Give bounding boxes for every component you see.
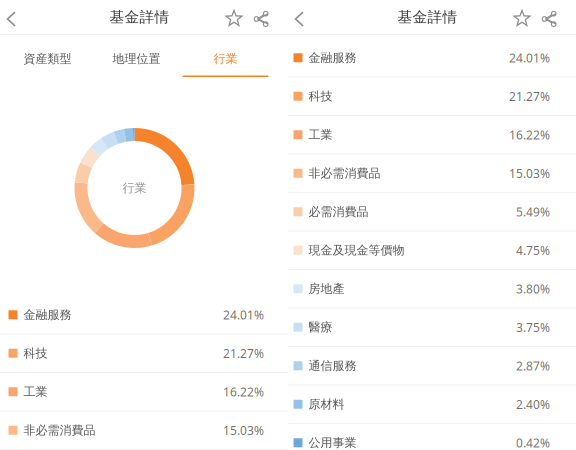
button[interactable]: Back: [292, 9, 308, 29]
staticText: 地理位置: [112, 51, 160, 66]
staticText: 科技: [23, 346, 47, 361]
staticText: 4.75%: [516, 242, 550, 258]
staticText: 3.80%: [516, 281, 550, 297]
button[interactable]: 非必需消費品: [288, 154, 576, 193]
staticText: 現金及現金等價物: [308, 243, 404, 258]
staticText: 基金詳情: [397, 8, 457, 26]
button[interactable]: 公用事業: [288, 424, 576, 450]
button[interactable]: 現金及現金等價物: [288, 231, 576, 270]
staticText: 2.40%: [516, 396, 550, 412]
staticText: 非必需消費品: [23, 423, 95, 438]
staticText: 工業: [23, 384, 47, 399]
button[interactable]: 科技: [288, 77, 576, 116]
button[interactable]: Add to favourites: [214, 9, 243, 28]
button[interactable]: 科技: [0, 334, 288, 373]
staticText: 3.75%: [516, 319, 550, 335]
button[interactable]: 房地產: [288, 270, 576, 308]
button[interactable]: 金融服務: [0, 296, 288, 334]
staticText: 醫療: [308, 320, 332, 335]
staticText: 金融服務: [308, 50, 356, 65]
staticText: 15.03%: [509, 165, 550, 181]
staticText: 15.03%: [223, 422, 264, 438]
button[interactable]: Add to favourites: [502, 9, 531, 28]
button[interactable]: 通信服務: [288, 347, 576, 385]
staticText: 行業: [122, 181, 146, 195]
staticText: 工業: [308, 127, 332, 142]
staticText: 必需消費品: [308, 204, 368, 219]
button[interactable]: 非必需消費品: [0, 411, 288, 450]
staticText: 非必需消費品: [308, 166, 380, 181]
button[interactable]: 金融服務: [288, 39, 576, 77]
button[interactable]: 醫療: [288, 308, 576, 347]
staticText: 通信服務: [308, 358, 356, 373]
button[interactable]: 地理位置: [92, 35, 181, 80]
staticText: 2.87%: [516, 358, 550, 374]
button[interactable]: Back: [4, 9, 20, 29]
staticText: 16.22%: [509, 127, 550, 143]
staticText: 21.27%: [509, 88, 550, 104]
button[interactable]: 工業: [0, 373, 288, 411]
button[interactable]: 工業: [288, 116, 576, 154]
button[interactable]: 行業: [181, 35, 270, 80]
staticText: 16.22%: [223, 384, 264, 400]
staticText: 金融服務: [23, 307, 71, 322]
staticText: 24.01%: [509, 50, 550, 66]
staticText: 資産類型: [23, 51, 71, 66]
staticText: 0.42%: [516, 435, 550, 450]
staticText: 公用事業: [308, 435, 356, 450]
button[interactable]: 必需消費品: [288, 193, 576, 231]
staticText: 行業: [213, 51, 237, 66]
staticText: 24.01%: [223, 307, 264, 323]
staticText: 房地產: [308, 281, 344, 296]
staticText: 原材料: [308, 397, 344, 412]
staticText: 科技: [308, 89, 332, 104]
button[interactable]: Share: [243, 9, 270, 28]
staticText: 21.27%: [223, 345, 264, 361]
button[interactable]: 原材料: [288, 385, 576, 424]
button[interactable]: Share: [531, 9, 558, 28]
staticText: 基金詳情: [109, 8, 169, 26]
staticText: 5.49%: [516, 204, 550, 220]
button[interactable]: 資産類型: [3, 35, 92, 80]
